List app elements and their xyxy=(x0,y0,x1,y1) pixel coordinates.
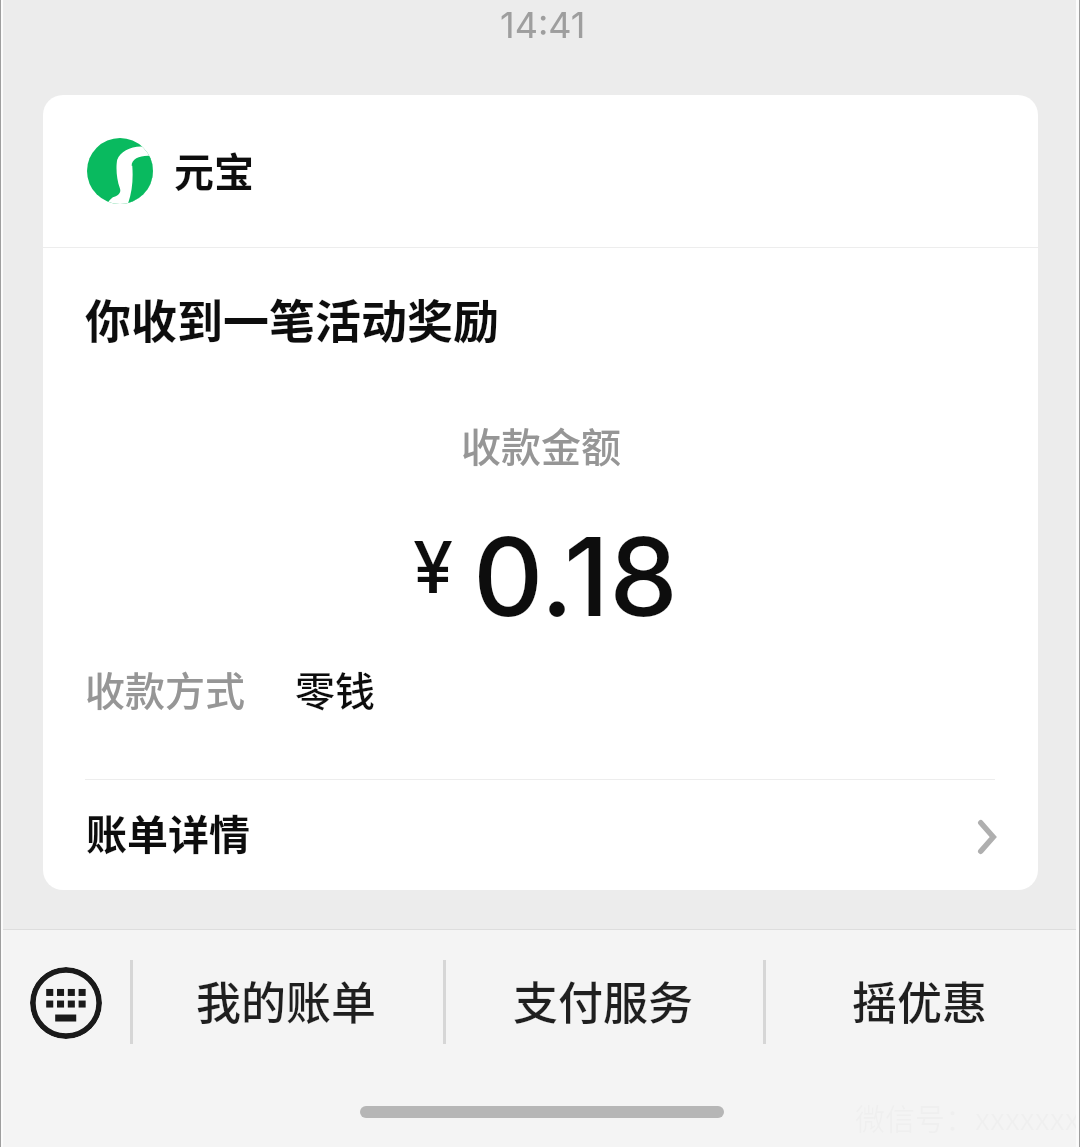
staticText: 账单详情 xyxy=(86,802,250,861)
staticText: 14:41 xyxy=(500,3,586,47)
button[interactable]: 账单详情 xyxy=(43,780,1038,890)
staticText: 微信号：xxxxxxxx xyxy=(855,1095,1080,1138)
staticText: 我的账单 xyxy=(196,968,377,1033)
button[interactable]: 我的账单 xyxy=(172,948,401,1053)
button[interactable]: 支付服务 xyxy=(489,948,718,1053)
staticText: 支付服务 xyxy=(513,968,694,1033)
staticText: 你收到一笔活动奖励 xyxy=(85,285,499,352)
staticText: 收款方式 xyxy=(85,660,245,718)
button[interactable]: 摇优惠 xyxy=(828,948,1012,1053)
staticText: 零钱 xyxy=(295,660,375,718)
button[interactable]: Keyboard xyxy=(30,967,102,1039)
staticText: ¥ xyxy=(413,523,454,610)
staticText: 摇优惠 xyxy=(852,968,988,1033)
staticText: 0.18 xyxy=(473,510,678,642)
staticText: 收款金额 xyxy=(461,416,621,474)
staticText: 元宝 xyxy=(174,141,254,199)
